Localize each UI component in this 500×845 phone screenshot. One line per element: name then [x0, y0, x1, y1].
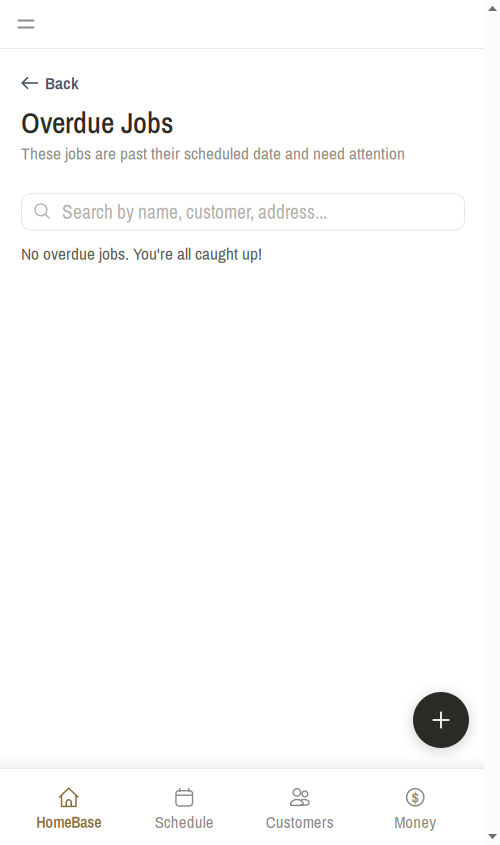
staticText: Overdue Jobs: [21, 103, 173, 142]
button[interactable]: Customers: [242, 771, 357, 843]
staticText: These jobs are past their scheduled date…: [21, 141, 405, 165]
staticText: No overdue jobs. You're all caught up!: [21, 242, 262, 265]
button[interactable]: Back: [21, 74, 79, 92]
staticText: Money: [394, 811, 436, 833]
button[interactable]: $: [357, 771, 473, 843]
staticText: HomeBase: [36, 811, 101, 833]
staticText: Search by name, customer, address...: [62, 199, 327, 225]
button[interactable]: Schedule: [126, 771, 242, 843]
staticText: $: [411, 786, 419, 809]
button[interactable]: HomeBase: [11, 771, 126, 843]
button[interactable]: Menu: [9, 7, 43, 41]
staticText: Back: [45, 71, 79, 95]
staticText: Customers: [266, 811, 334, 833]
staticText: Schedule: [155, 811, 214, 833]
button[interactable]: Add: [413, 692, 469, 748]
